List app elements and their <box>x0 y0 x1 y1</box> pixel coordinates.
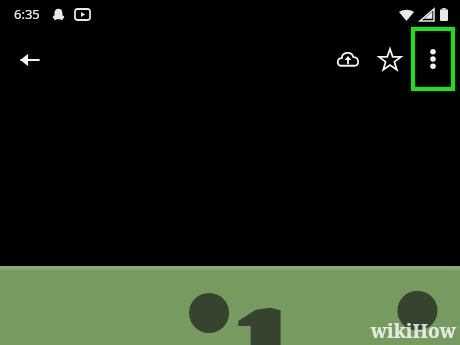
button[interactable]: More options <box>415 31 451 87</box>
button[interactable]: Star <box>369 39 411 81</box>
button[interactable]: Back <box>10 40 50 80</box>
staticText: 6:35 <box>14 5 40 23</box>
staticText: wikiHow <box>370 318 456 344</box>
button[interactable]: Upload to cloud <box>327 39 369 81</box>
